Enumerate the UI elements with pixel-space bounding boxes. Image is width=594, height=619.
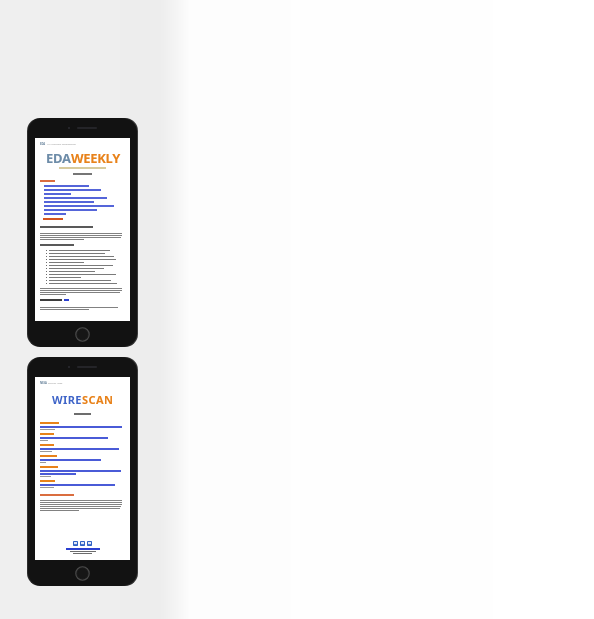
button[interactable] xyxy=(40,480,125,491)
staticText: WIRE xyxy=(52,392,82,407)
button[interactable]: LinkedIn xyxy=(80,541,85,546)
staticText: U.S. Economic Development xyxy=(47,143,76,146)
button[interactable] xyxy=(40,192,125,196)
button[interactable]: Twitter xyxy=(73,541,78,546)
staticText: EDA xyxy=(40,142,46,146)
button[interactable] xyxy=(40,218,125,220)
staticText: WEEKLY xyxy=(71,149,120,167)
button[interactable]: Facebook xyxy=(87,541,92,546)
button[interactable] xyxy=(40,208,125,212)
staticText: EDA xyxy=(46,149,71,167)
staticText: SCAN xyxy=(82,392,114,407)
button[interactable] xyxy=(40,299,125,301)
button[interactable] xyxy=(40,196,125,200)
button[interactable] xyxy=(40,422,125,433)
button[interactable] xyxy=(40,188,125,192)
button[interactable] xyxy=(40,184,125,188)
button[interactable] xyxy=(40,212,125,216)
button[interactable] xyxy=(40,444,125,455)
button[interactable]: Home button xyxy=(75,327,90,342)
button[interactable] xyxy=(40,466,125,480)
button[interactable] xyxy=(40,204,125,208)
button[interactable] xyxy=(40,455,125,466)
staticText: Security News xyxy=(48,382,63,385)
button[interactable]: Home button xyxy=(75,566,90,581)
button[interactable] xyxy=(40,433,125,444)
button[interactable] xyxy=(40,200,125,204)
staticText: NSSA xyxy=(40,381,47,385)
